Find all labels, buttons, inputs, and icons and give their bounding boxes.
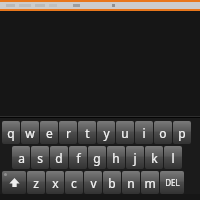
staticText: o [159, 125, 167, 141]
button[interactable]: h [107, 146, 125, 169]
staticText: g [93, 150, 101, 166]
staticText: d [55, 150, 63, 166]
staticText: i [142, 125, 146, 141]
button[interactable]: t [78, 121, 96, 144]
staticText: l [171, 150, 175, 166]
button[interactable]: Shift [2, 171, 26, 194]
button[interactable] [0, 2, 200, 9]
staticText: a [18, 150, 25, 166]
button[interactable]: z [27, 171, 45, 194]
staticText: f [76, 150, 81, 166]
button[interactable]: o [154, 121, 172, 144]
staticText: q [7, 125, 15, 141]
staticText: p [178, 125, 186, 141]
button[interactable]: c [65, 171, 83, 194]
button[interactable]: y [97, 121, 115, 144]
staticText: x [52, 175, 59, 191]
button[interactable]: x [46, 171, 64, 194]
staticText: s [37, 150, 43, 166]
button[interactable]: r [59, 121, 77, 144]
button[interactable]: j [126, 146, 144, 169]
button[interactable]: Delete [160, 171, 184, 194]
staticText: c [71, 175, 77, 191]
staticText: n [127, 175, 135, 191]
staticText: z [33, 175, 39, 191]
staticText: r [66, 125, 71, 141]
button[interactable]: k [145, 146, 163, 169]
button[interactable]: b [103, 171, 121, 194]
button[interactable]: u [116, 121, 134, 144]
button[interactable]: w [21, 121, 39, 144]
staticText: b [108, 175, 116, 191]
staticText: e [46, 125, 53, 141]
button[interactable]: v [84, 171, 102, 194]
staticText: k [151, 150, 158, 166]
button[interactable]: m [141, 171, 159, 194]
button[interactable]: g [88, 146, 106, 169]
staticText: v [90, 175, 97, 191]
staticText: j [133, 150, 137, 166]
staticText: h [112, 150, 120, 166]
button[interactable]: s [31, 146, 49, 169]
button[interactable]: f [69, 146, 87, 169]
button[interactable]: p [173, 121, 191, 144]
staticText: w [25, 125, 35, 141]
button[interactable]: e [40, 121, 58, 144]
button[interactable]: a [12, 146, 30, 169]
staticText: u [121, 125, 129, 141]
staticText: y [103, 125, 110, 141]
staticText: DEL [165, 177, 180, 188]
button[interactable]: n [122, 171, 140, 194]
button[interactable]: l [164, 146, 182, 169]
button[interactable]: q [2, 121, 20, 144]
staticText: t [85, 125, 90, 141]
staticText: m [144, 175, 156, 191]
button[interactable]: i [135, 121, 153, 144]
button[interactable]: d [50, 146, 68, 169]
